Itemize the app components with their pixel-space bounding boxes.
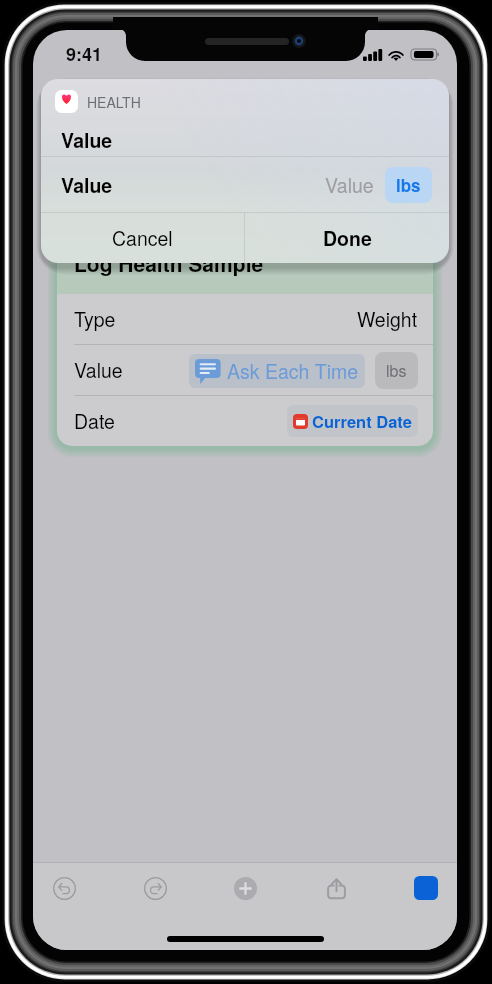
button[interactable]: Add action: [224, 867, 266, 909]
button[interactable]: Value: [57, 345, 433, 395]
staticText: Current Date: [312, 409, 412, 433]
button[interactable]: Cancel: [41, 213, 244, 263]
staticText: Log Health Sample: [74, 248, 264, 277]
staticText: Date: [74, 407, 115, 435]
button[interactable]: Stop: [405, 867, 447, 909]
button[interactable]: Ask Each Time: [189, 354, 365, 388]
staticText: Type: [74, 305, 116, 333]
staticText: Weight: [357, 305, 418, 333]
button[interactable]: Done: [245, 213, 449, 263]
staticText: Done: [323, 224, 372, 252]
staticText: Value: [74, 356, 123, 384]
button[interactable]: Current Date: [287, 405, 418, 437]
button[interactable]: lbs: [385, 167, 432, 203]
staticText: Value: [325, 171, 374, 199]
staticText: Value: [61, 171, 113, 199]
staticText: HEALTH: [87, 92, 141, 112]
staticText: Ask Each Time: [227, 357, 359, 385]
button[interactable]: lbs: [375, 352, 418, 389]
button[interactable]: Date: [57, 396, 433, 446]
staticText: Value: [61, 126, 113, 154]
button[interactable]: Type: [57, 294, 433, 344]
staticText: 9:41: [66, 41, 103, 67]
staticText: lbs: [396, 173, 421, 197]
button[interactable]: Share: [315, 867, 357, 909]
staticText: Cancel: [112, 224, 173, 252]
button[interactable]: Undo: [43, 867, 85, 909]
button[interactable]: Redo: [134, 867, 176, 909]
staticText: lbs: [386, 359, 407, 382]
